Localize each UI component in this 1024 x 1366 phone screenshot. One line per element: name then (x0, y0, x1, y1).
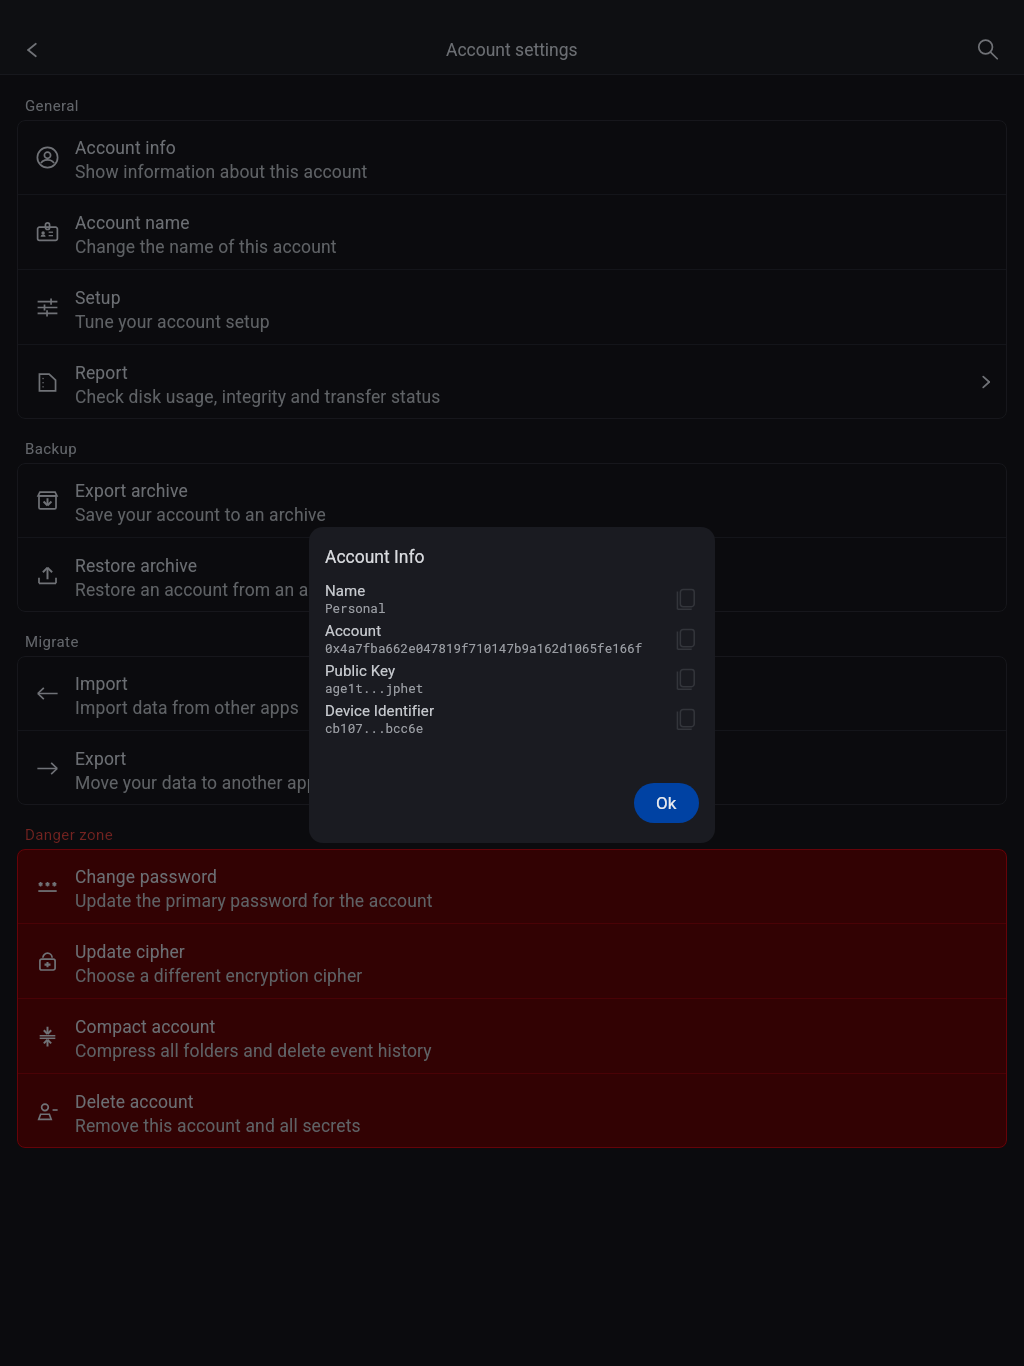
staticText: Backup (25, 440, 78, 458)
button[interactable]: Restore archive (17, 538, 1007, 612)
staticText: Report (75, 363, 128, 384)
staticText: Delete account (75, 1092, 194, 1113)
other: Open (965, 372, 1007, 392)
button[interactable]: Compact account (17, 999, 1007, 1073)
button[interactable]: Account name (17, 195, 1007, 269)
staticText: Choose a different encryption cipher (75, 966, 363, 987)
staticText: Change the name of this account (75, 237, 337, 258)
staticText: Move your data to another app (75, 773, 317, 794)
staticText: Account Info (325, 547, 425, 568)
staticText: Update the primary password for the acco… (75, 891, 433, 912)
button[interactable]: Back (8, 26, 56, 74)
button[interactable]: Export archive (17, 463, 1007, 537)
button[interactable]: Ok (634, 783, 699, 823)
button[interactable]: Account info (17, 120, 1007, 194)
staticText: Compact account (75, 1017, 216, 1038)
staticText: Device Identifier (325, 702, 435, 720)
staticText: Export (75, 749, 127, 770)
staticText: Ok (656, 793, 677, 813)
staticText: Account info (75, 138, 176, 159)
staticText: Personal (325, 600, 386, 617)
staticText: Danger zone (25, 826, 113, 844)
staticText: Check disk usage, integrity and transfer… (75, 387, 441, 408)
staticText: General (25, 97, 79, 115)
staticText: Account name (75, 213, 190, 234)
staticText: Migrate (25, 633, 79, 651)
button[interactable]: Copy Public Key (663, 661, 699, 697)
staticText: Restore archive (75, 556, 198, 577)
staticText: cb107...bcc6e (325, 720, 424, 737)
staticText: Public Key (325, 662, 396, 680)
staticText: Import data from other apps (75, 698, 299, 719)
button[interactable]: Import (17, 656, 1007, 730)
staticText: Import (75, 674, 128, 695)
button[interactable]: Update cipher (17, 924, 1007, 998)
staticText: Remove this account and all secrets (75, 1116, 361, 1137)
button[interactable]: Copy Account (663, 621, 699, 657)
staticText: Change password (75, 867, 218, 888)
staticText: Update cipher (75, 942, 185, 963)
button[interactable]: Change password (17, 849, 1007, 923)
button[interactable]: Search (964, 26, 1012, 74)
staticText: Setup (75, 288, 121, 309)
staticText: Name (325, 582, 366, 600)
staticText: Account (325, 622, 382, 640)
staticText: Compress all folders and delete event hi… (75, 1041, 432, 1062)
staticText: age1t...jphet (325, 680, 424, 697)
button[interactable]: Delete account (17, 1074, 1007, 1148)
staticText: Export archive (75, 481, 188, 502)
staticText: Show information about this account (75, 162, 368, 183)
button[interactable]: Export (17, 731, 1007, 805)
staticText: 0x4a7fba662e047819f710147b9a162d1065fe16… (325, 640, 643, 657)
button[interactable]: Copy Name (663, 581, 699, 617)
staticText: Save your account to an archive (75, 505, 327, 526)
staticText: Restore an account from an archive (75, 580, 356, 601)
button[interactable]: Setup (17, 270, 1007, 344)
staticText: Account settings (446, 40, 578, 61)
staticText: Tune your account setup (75, 312, 270, 333)
button[interactable]: Copy Device Identifier (663, 701, 699, 737)
button[interactable]: Report (17, 345, 1007, 419)
